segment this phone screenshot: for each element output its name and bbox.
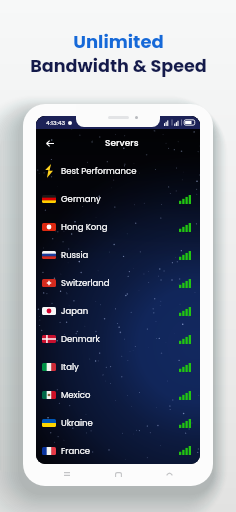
staticText: Mexico [61,389,91,401]
staticText: Hong Kong [61,221,108,233]
button[interactable]: Germany [36,185,200,213]
button[interactable]: Back [42,135,58,151]
button[interactable]: Italy [36,353,200,381]
button[interactable]: Home [111,467,125,481]
button[interactable]: France [36,437,200,464]
staticText: France [61,445,91,457]
button[interactable]: Recent apps [60,467,74,481]
button[interactable]: Japan [36,297,200,325]
button[interactable]: Ukraine [36,409,200,437]
staticText: Best Performance [61,165,137,177]
staticText: Russia [61,249,89,261]
staticText: Unlimited [73,29,164,54]
staticText: Italy [61,361,79,373]
button[interactable]: Denmark [36,325,200,353]
button[interactable]: Hong Kong [36,213,200,241]
button[interactable]: Mexico [36,381,200,409]
staticText: 4:13:43 [46,119,66,127]
staticText: Germany [61,193,101,205]
button[interactable]: Switzerland [36,269,200,297]
button[interactable]: Russia [36,241,200,269]
staticText: Denmark [61,333,100,345]
staticText: Japan [61,305,89,317]
staticText: Servers [105,137,139,150]
button[interactable]: Back [162,467,176,481]
button[interactable]: Best Performance [36,157,200,185]
staticText: Switzerland [61,277,110,289]
staticText: Bandwidth & Speed [30,54,207,79]
staticText: Ukraine [61,417,93,429]
